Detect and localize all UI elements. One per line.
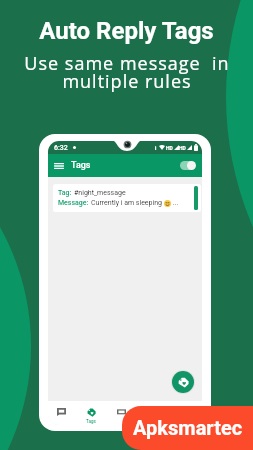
button[interactable]: Enable auto reply <box>180 161 196 170</box>
staticText: Auto Reply Tags <box>39 17 214 45</box>
button[interactable]: Cards <box>106 401 136 425</box>
button[interactable]: Chats <box>48 401 76 425</box>
staticText: Use same message in multiple rules <box>24 51 230 93</box>
staticText: Tag: <box>58 189 74 197</box>
button[interactable]: Add tag <box>172 371 194 393</box>
staticText: Tags <box>86 419 96 424</box>
staticText: Currently i am sleeping <box>91 199 164 207</box>
button[interactable]: Open navigation menu <box>53 160 65 172</box>
button[interactable]: Tag: <box>53 184 201 212</box>
button[interactable]: Apksmartec <box>122 406 253 450</box>
staticText: HD <box>166 145 173 151</box>
button[interactable]: Saved <box>136 401 166 425</box>
staticText: Tags <box>71 160 91 171</box>
staticText: ... <box>171 199 179 207</box>
staticText: Message: <box>58 199 91 207</box>
button[interactable]: Tags <box>76 401 106 425</box>
staticText: Apksmartec <box>133 416 243 439</box>
staticText: #night_message <box>74 189 126 197</box>
staticText: HD <box>179 145 186 151</box>
staticText: 6:32 <box>54 144 68 152</box>
